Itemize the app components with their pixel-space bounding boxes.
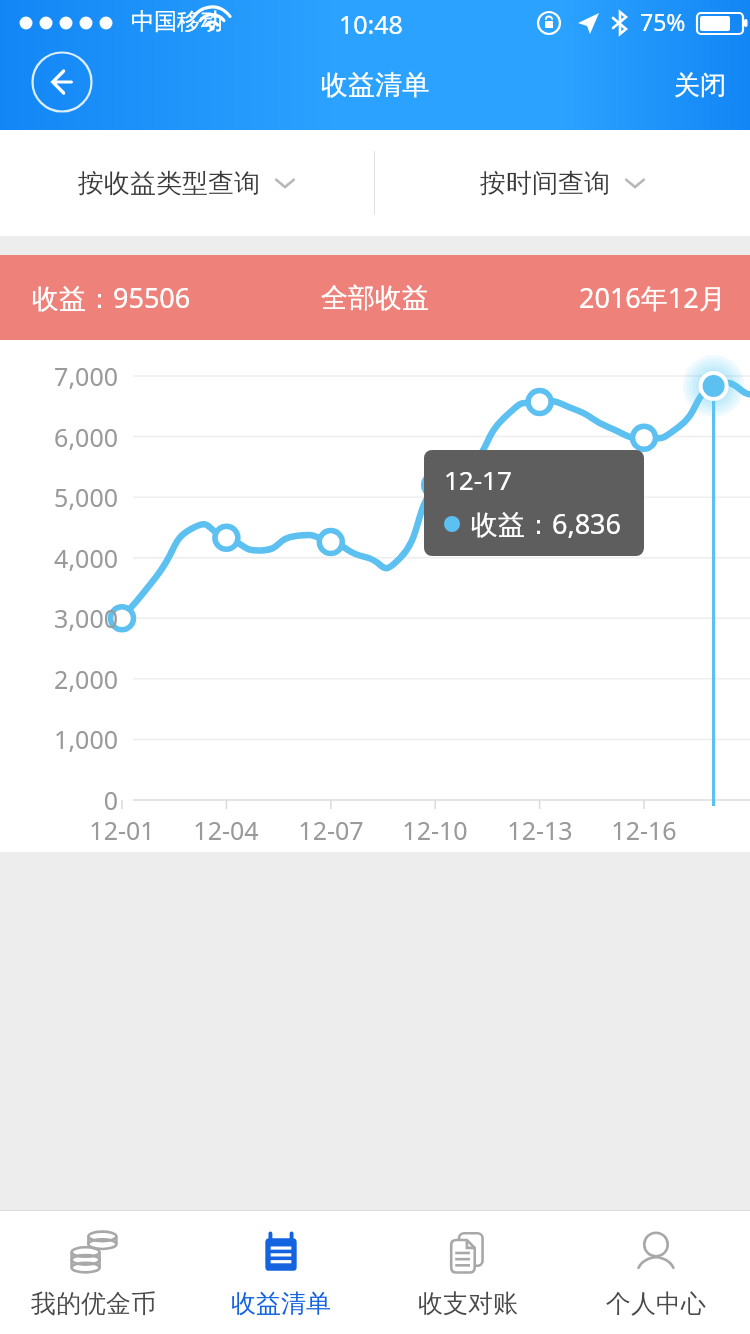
staticText: 1,000: [8, 722, 118, 756]
staticText: 7,000: [8, 359, 118, 393]
button[interactable]: 按收益类型查询: [0, 130, 374, 236]
button[interactable]: 关闭: [650, 55, 750, 116]
staticText: 个人中心: [606, 1288, 706, 1319]
staticText: 5,000: [8, 480, 118, 514]
staticText: 12-17: [444, 462, 512, 497]
staticText: 收益清单: [231, 1288, 331, 1319]
staticText: 12-01: [62, 813, 182, 847]
button[interactable]: 收支对账: [374, 1211, 562, 1334]
staticText: 0: [8, 783, 118, 817]
staticText: 收益清单: [321, 68, 429, 102]
staticText: 12-10: [375, 813, 495, 847]
staticText: 2016年12月: [579, 279, 726, 316]
staticText: 按收益类型查询: [78, 167, 260, 200]
staticText: 75%: [640, 6, 686, 37]
staticText: 关闭: [674, 69, 726, 102]
button[interactable]: 收益清单: [187, 1211, 374, 1334]
staticText: 收支对账: [418, 1288, 518, 1319]
staticText: 收益：6,836: [471, 505, 622, 542]
button[interactable]: 我的优金币: [0, 1211, 187, 1334]
staticText: 12-13: [480, 813, 600, 847]
staticText: 中国移动: [131, 7, 223, 36]
staticText: 10:48: [339, 7, 403, 41]
button[interactable]: Back: [31, 51, 93, 113]
staticText: 我的优金币: [31, 1288, 156, 1319]
staticText: 12-04: [166, 813, 286, 847]
staticText: 3,000: [8, 601, 118, 635]
staticText: 2,000: [8, 662, 118, 696]
button[interactable]: 按时间查询: [375, 130, 750, 236]
staticText: 按时间查询: [480, 167, 610, 200]
staticText: 6,000: [8, 420, 118, 454]
staticText: 收益：95506: [32, 279, 191, 316]
staticText: 12-16: [584, 813, 704, 847]
button[interactable]: 个人中心: [562, 1211, 750, 1334]
staticText: 12-07: [271, 813, 391, 847]
staticText: 全部收益: [321, 281, 429, 315]
staticText: 4,000: [8, 541, 118, 575]
